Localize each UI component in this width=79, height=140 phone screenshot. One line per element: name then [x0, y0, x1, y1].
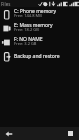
staticText: Files	[1, 1, 11, 7]
staticText: Free: 18.2 GB	[14, 27, 39, 32]
staticText: C: Phone memory	[14, 8, 56, 15]
button[interactable]: Back	[0, 127, 18, 140]
button[interactable]: Recent apps	[64, 127, 76, 140]
button[interactable]: F: NO NAME	[0, 35, 79, 49]
button[interactable]: E: Mass memory	[0, 21, 79, 35]
staticText: Free: 144.8 MB	[14, 13, 42, 18]
staticText: F: NO NAME	[14, 36, 43, 43]
button[interactable]: Backup and restore	[0, 49, 79, 63]
staticText: E: Mass memory	[14, 22, 53, 29]
staticText: Free: 3.2 GB	[14, 41, 37, 46]
staticText: Backup and restore	[14, 53, 60, 60]
button[interactable]: C: Phone memory	[0, 7, 79, 21]
